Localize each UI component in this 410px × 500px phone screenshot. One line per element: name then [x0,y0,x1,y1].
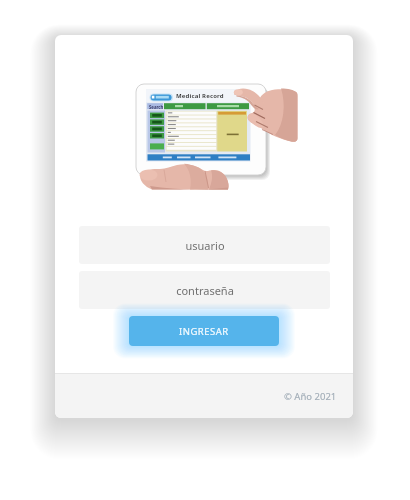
staticText: INGRESAR [179,325,229,338]
staticText: contraseña [176,283,234,298]
staticText: © Año 2021 [284,390,337,403]
button[interactable]: usuario [79,226,330,264]
staticText: Medical Record [176,92,224,100]
staticText: Search [149,104,164,110]
button[interactable]: INGRESAR [129,316,279,346]
staticText: usuario [185,238,225,253]
button[interactable]: contraseña [79,271,330,309]
